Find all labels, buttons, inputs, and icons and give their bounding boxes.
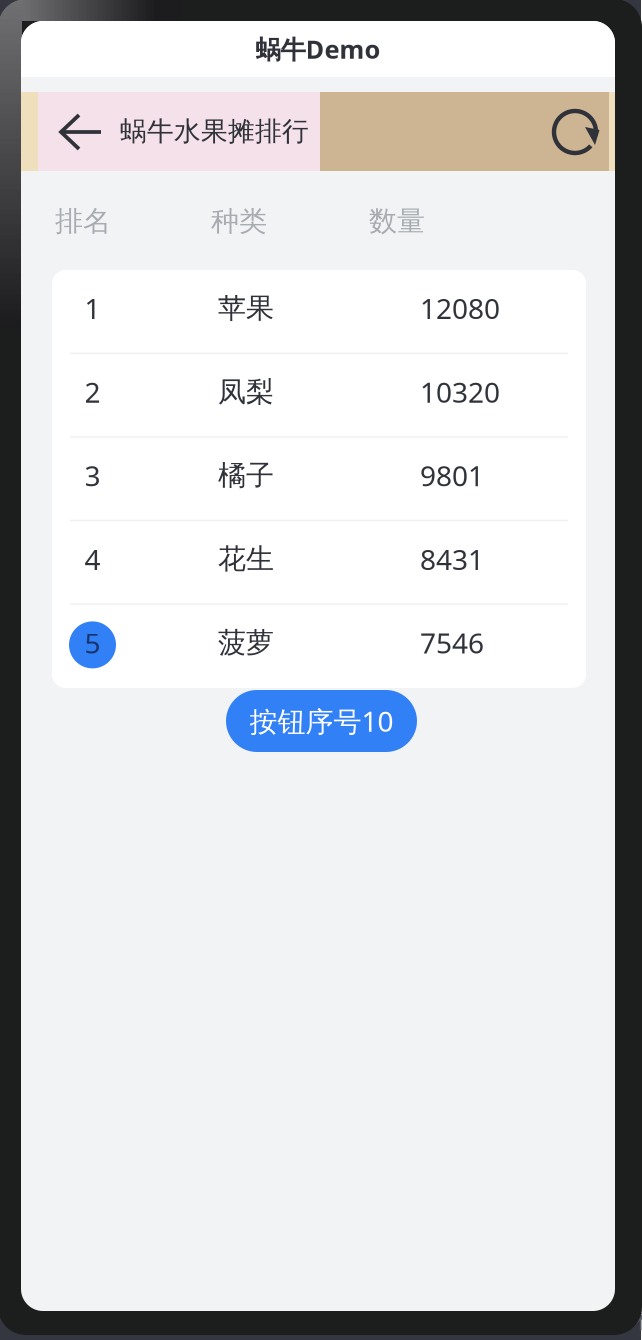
- button[interactable]: 按钮序号10: [226, 690, 417, 752]
- staticText: @稀土掘金技术社区: [469, 1302, 642, 1334]
- staticText: 排名: [55, 204, 111, 238]
- staticText: 蜗牛水果摊排行: [120, 115, 309, 148]
- staticText: 菠萝: [218, 625, 274, 660]
- staticText: 数量: [369, 204, 425, 238]
- staticText: 8431: [420, 540, 484, 578]
- staticText: 橘子: [218, 458, 274, 493]
- staticText: 5: [84, 624, 100, 661]
- button[interactable]: Refresh: [539, 92, 609, 171]
- staticText: 2: [84, 373, 100, 410]
- staticText: 12080: [420, 290, 500, 327]
- staticText: 4: [84, 540, 100, 578]
- staticText: 10320: [420, 373, 500, 410]
- staticText: 苹果: [218, 291, 274, 325]
- staticText: 9801: [420, 457, 484, 494]
- staticText: 7546: [420, 624, 484, 661]
- staticText: 花生: [218, 542, 274, 576]
- staticText: 1: [84, 290, 100, 327]
- button[interactable]: 蜗牛水果摊排行: [38, 92, 320, 171]
- staticText: 凤梨: [218, 375, 274, 409]
- staticText: 3: [84, 457, 100, 494]
- staticText: 蜗牛Demo: [255, 32, 380, 66]
- staticText: 按钮序号10: [249, 702, 393, 740]
- staticText: 种类: [211, 204, 267, 238]
